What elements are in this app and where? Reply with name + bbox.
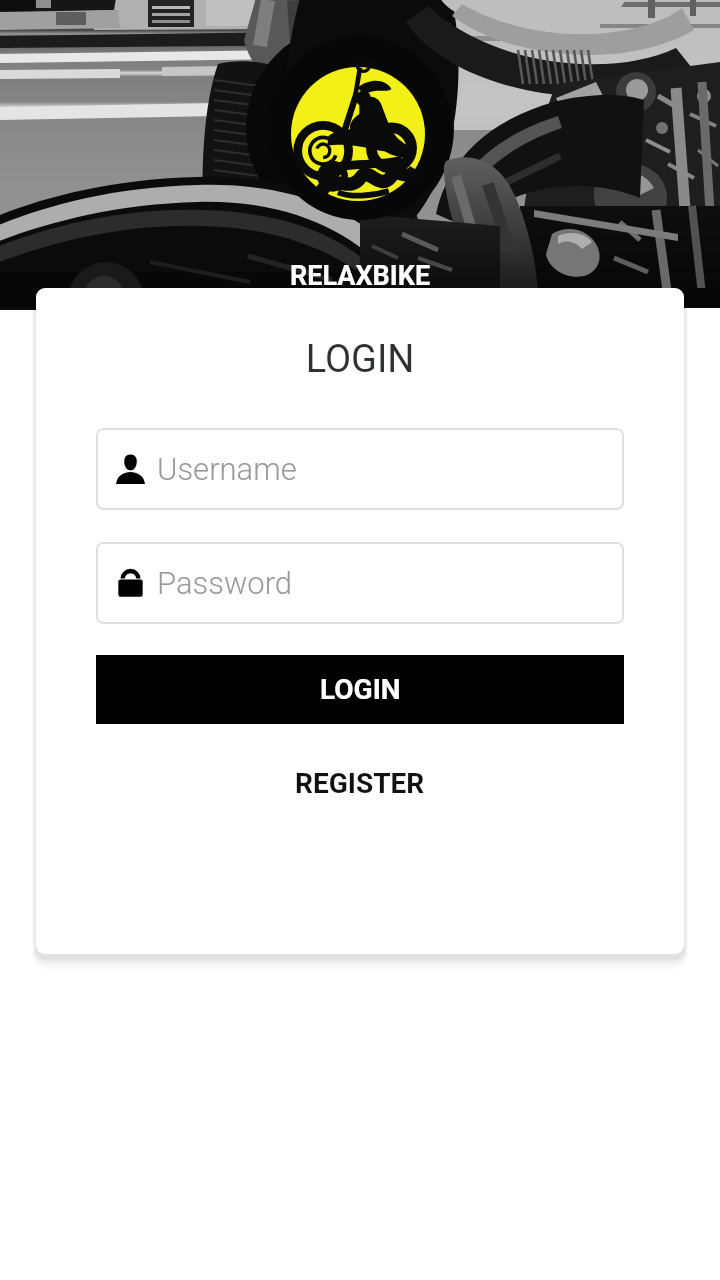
staticText: Username [157, 451, 297, 487]
staticText: RELAXBIKE [290, 260, 431, 292]
button[interactable]: Username [96, 428, 624, 510]
staticText: LOGIN [320, 673, 401, 706]
staticText: LOGIN [36, 337, 684, 382]
button[interactable]: Password [96, 542, 624, 624]
button[interactable]: REGISTER [36, 752, 684, 814]
staticText: Password [157, 565, 293, 601]
staticText: REGISTER [295, 767, 425, 800]
button[interactable]: LOGIN [96, 655, 624, 724]
